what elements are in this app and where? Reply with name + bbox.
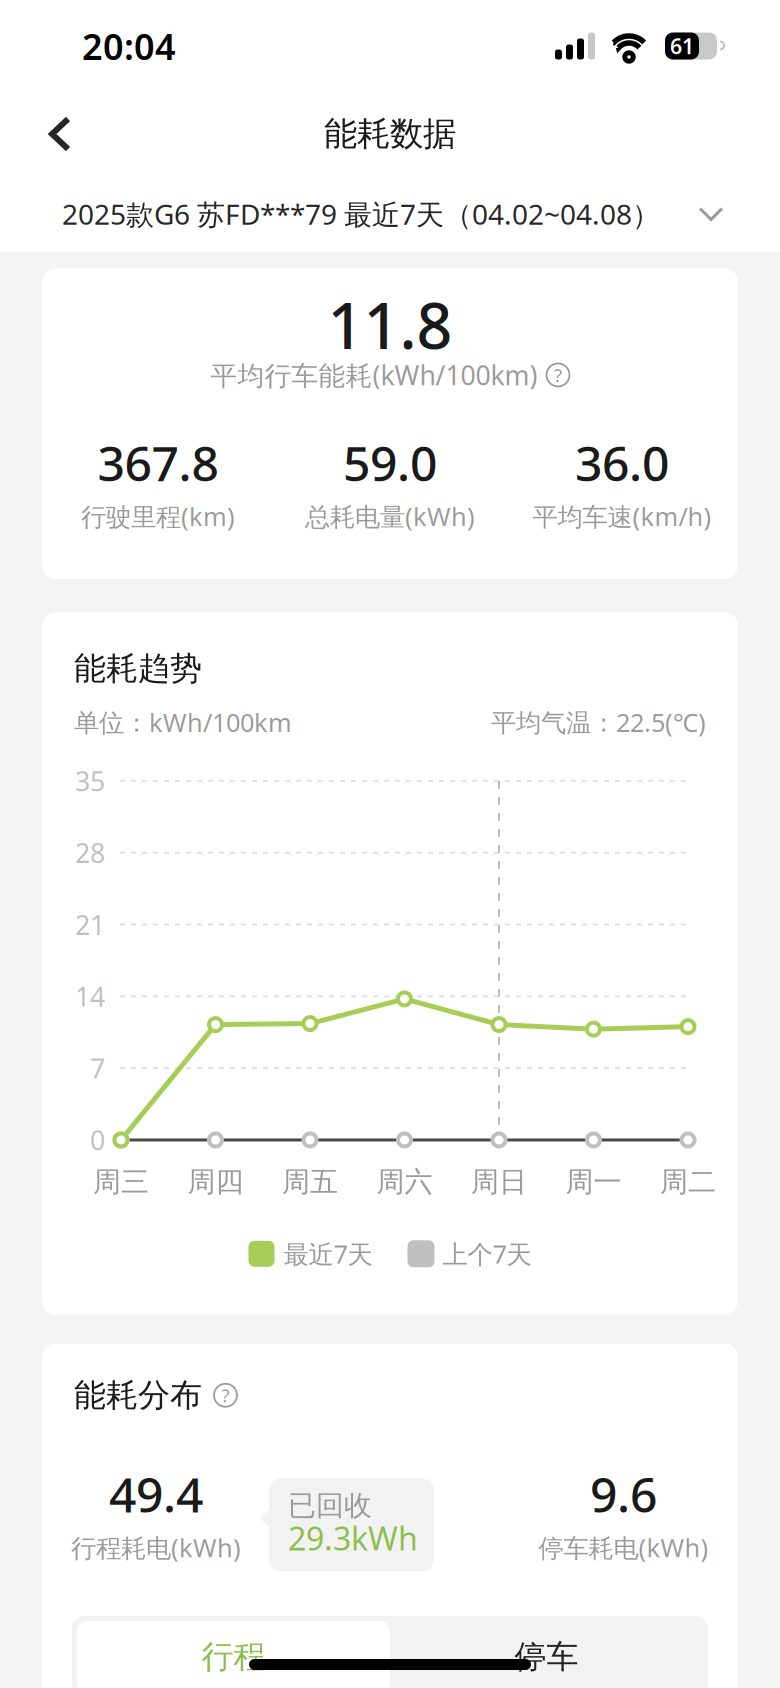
staticText: 周一	[565, 1165, 621, 1199]
button[interactable]: 停车	[390, 1621, 703, 1688]
staticText: 能耗数据	[324, 113, 456, 154]
staticText: 20:04	[82, 22, 176, 70]
staticText: 周二	[660, 1165, 716, 1199]
staticText: 行程耗电(kWh)	[71, 1531, 241, 1564]
staticText: 单位：kWh/100km	[74, 705, 292, 739]
staticText: 2025款G6 苏FD***79 最近7天（04.02~04.08）	[62, 195, 660, 233]
staticText: 0	[90, 1122, 105, 1158]
staticText: 行驶里程(km)	[81, 499, 235, 533]
button[interactable]: 行程	[77, 1621, 390, 1688]
staticText: 35	[75, 763, 105, 799]
staticText: 49.4	[109, 1462, 203, 1526]
staticText: 行程	[201, 1637, 265, 1677]
staticText: 已回收	[288, 1488, 372, 1523]
staticText: 平均气温：22.5(℃)	[491, 705, 706, 739]
staticText: 36.0	[575, 431, 669, 494]
staticText: 11.8	[327, 283, 452, 366]
staticText: 周日	[471, 1165, 527, 1199]
staticText: 停车	[514, 1637, 578, 1677]
staticText: 能耗趋势	[74, 649, 202, 688]
staticText: 周六	[376, 1165, 432, 1199]
staticText: 停车耗电(kWh)	[538, 1531, 708, 1564]
staticText: 59.0	[343, 431, 437, 494]
staticText: 周五	[282, 1165, 338, 1199]
staticText: 21	[75, 907, 105, 942]
staticText: ?	[221, 1383, 229, 1408]
staticText: 28	[75, 835, 105, 870]
staticText: 9.6	[590, 1462, 657, 1526]
staticText: 上个7天	[442, 1237, 531, 1271]
staticText: 周四	[187, 1165, 243, 1199]
staticText: 能耗分布	[74, 1376, 202, 1415]
button[interactable]: 2025款G6 苏FD***79 最近7天（04.02~04.08）	[0, 176, 780, 252]
button[interactable]: Back	[0, 94, 98, 174]
staticText: 61	[670, 32, 694, 60]
staticText: 14	[75, 979, 105, 1014]
staticText: 367.8	[97, 431, 218, 494]
staticText: 平均车速(km/h)	[532, 499, 711, 533]
staticText: 周三	[93, 1165, 149, 1199]
staticText: 总耗电量(kWh)	[305, 499, 475, 533]
staticText: 平均行车能耗(kWh/100km)	[210, 357, 537, 393]
staticText: ?	[554, 362, 562, 387]
staticText: 最近7天	[283, 1237, 372, 1271]
staticText: 29.3kWh	[288, 1517, 418, 1559]
staticText: 7	[90, 1050, 105, 1086]
